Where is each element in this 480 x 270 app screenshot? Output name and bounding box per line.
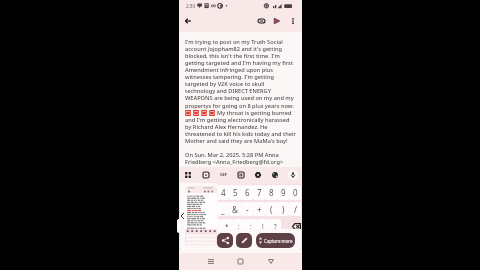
staticText: On Sun, Mar 2, 2025, 5:28 PM Anna [185, 151, 279, 159]
staticText: + [257, 204, 262, 215]
staticText: % [180, 222, 186, 230]
staticText: 4 [221, 187, 226, 198]
staticText: - [246, 204, 249, 215]
button[interactable]: ( [265, 202, 277, 216]
staticText: @ [183, 204, 191, 215]
button[interactable]: 2 [193, 185, 205, 200]
staticText: 9 [281, 187, 286, 198]
button[interactable]: 9 [277, 185, 289, 200]
staticText: ! [262, 222, 264, 230]
button[interactable]: Capture more [256, 233, 295, 248]
button[interactable]: Backspace [292, 219, 301, 233]
button[interactable]: Settings [252, 169, 264, 181]
button[interactable]: Clipboard [235, 169, 247, 181]
button[interactable]: Apps [182, 169, 194, 181]
staticText: 5 [233, 187, 238, 198]
staticText: # [196, 204, 202, 215]
button[interactable]: + [253, 202, 265, 216]
button[interactable]: Recents [204, 255, 217, 268]
button[interactable]: ) [277, 202, 289, 216]
staticText: witnesses tampering. I'm getting [185, 73, 274, 81]
button[interactable]: Edit [236, 233, 252, 248]
staticText: ) [282, 204, 285, 215]
staticText: 2 [197, 187, 202, 198]
staticText: ; [250, 222, 252, 230]
staticText: 1 [185, 187, 190, 198]
staticText: 8 [269, 187, 274, 198]
staticText: ] [203, 222, 206, 230]
button[interactable]: Voice input [287, 169, 299, 181]
staticText: Mother and said they are MaMa's boy! [185, 137, 288, 145]
staticText: * [225, 222, 229, 230]
staticText: and I'm getting electronically harassed [185, 116, 290, 124]
button[interactable]: [ [188, 219, 199, 233]
button[interactable]: : [233, 219, 245, 233]
button[interactable]: # [193, 202, 205, 216]
staticText: 2:30 [186, 3, 196, 9]
staticText: threatened to kill his kids today and th… [185, 130, 296, 138]
button[interactable]: - [241, 202, 253, 216]
staticText: WEAPONS are being used on my and my [185, 94, 294, 102]
staticText: Capture more [264, 238, 293, 244]
staticText: · [215, 222, 217, 230]
staticText: Amendment infringed upon plus [185, 66, 274, 74]
button[interactable]: ! [257, 219, 269, 233]
staticText: My throat is getting burned [217, 109, 292, 116]
other: Previous [181, 213, 184, 219]
staticText: 3 [209, 187, 214, 198]
button[interactable]: Attach [255, 15, 267, 27]
button[interactable]: 3 [205, 185, 217, 200]
button[interactable]: 7 [253, 185, 265, 200]
button[interactable]: 6 [241, 185, 253, 200]
staticText: targeted by V2K voice to skull [185, 80, 265, 88]
button[interactable]: ? [269, 219, 281, 233]
staticText: account Jojopham82 and it's getting [185, 45, 282, 53]
staticText: ? [274, 222, 277, 230]
button[interactable]: _ [217, 202, 229, 216]
staticText: 0 [293, 187, 298, 198]
button[interactable]: 4 [217, 185, 229, 200]
button[interactable]: / [289, 202, 301, 216]
staticText: by Richard Alex Hernandez. He [185, 123, 268, 131]
button[interactable]: Screenshot preview [185, 186, 217, 247]
staticText: Friedberg <Anna_Friedberg@fd.org> [185, 158, 284, 166]
button[interactable]: Back [264, 255, 277, 268]
staticText: : [238, 222, 240, 230]
button[interactable]: Back [182, 15, 194, 27]
staticText: _ [221, 204, 225, 215]
button[interactable]: & [229, 202, 241, 216]
staticText: ( [270, 204, 273, 215]
button[interactable]: Share [217, 233, 233, 248]
button[interactable]: 5 [229, 185, 241, 200]
button[interactable]: $ [205, 202, 217, 216]
staticText: GIF [220, 172, 227, 178]
button[interactable]: 8 [265, 185, 277, 200]
button[interactable]: Home [234, 255, 247, 268]
button[interactable]: % [177, 219, 188, 233]
staticText: propertys for going on 8 plus years now: [185, 102, 294, 110]
staticText: I'm trying to post on my Truth Social [185, 38, 283, 46]
staticText: & [232, 204, 238, 215]
staticText: technology and DIRECT ENERGY [185, 87, 271, 95]
staticText: [ [192, 222, 195, 230]
button[interactable]: · [210, 219, 221, 233]
button[interactable]: Send [271, 15, 283, 27]
button[interactable]: ] [199, 219, 210, 233]
staticText: / [294, 204, 297, 215]
button[interactable]: Themes [269, 169, 281, 181]
button[interactable]: ; [245, 219, 257, 233]
button[interactable]: 0 [289, 185, 301, 200]
button[interactable]: Sticker [200, 169, 212, 181]
button[interactable]: More options [287, 15, 299, 27]
staticText: 6 [245, 187, 250, 198]
button[interactable]: * [221, 219, 233, 233]
button[interactable]: @ [181, 202, 193, 216]
staticText: getting targeted and I'm having my first [185, 59, 293, 67]
staticText: 7 [257, 187, 262, 198]
button[interactable]: 1 [181, 185, 193, 200]
staticText: blocked, this isn't the first time. I'm [185, 52, 280, 60]
button[interactable]: GIF [217, 169, 229, 181]
